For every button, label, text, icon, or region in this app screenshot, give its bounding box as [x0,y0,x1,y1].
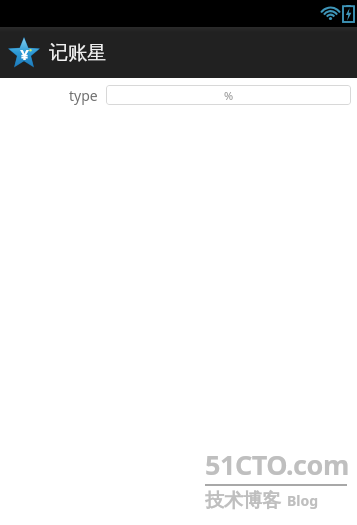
staticText: Blog [287,491,319,510]
button[interactable]: % [106,85,351,105]
staticText: ¥ [20,44,29,64]
staticText: % [224,88,234,103]
button[interactable]: ¥ [7,27,106,78]
staticText: 技术博客 [205,489,281,513]
staticText: 记账星 [49,41,106,65]
staticText: 51CTO.com [205,446,349,483]
staticText: type [69,86,98,105]
